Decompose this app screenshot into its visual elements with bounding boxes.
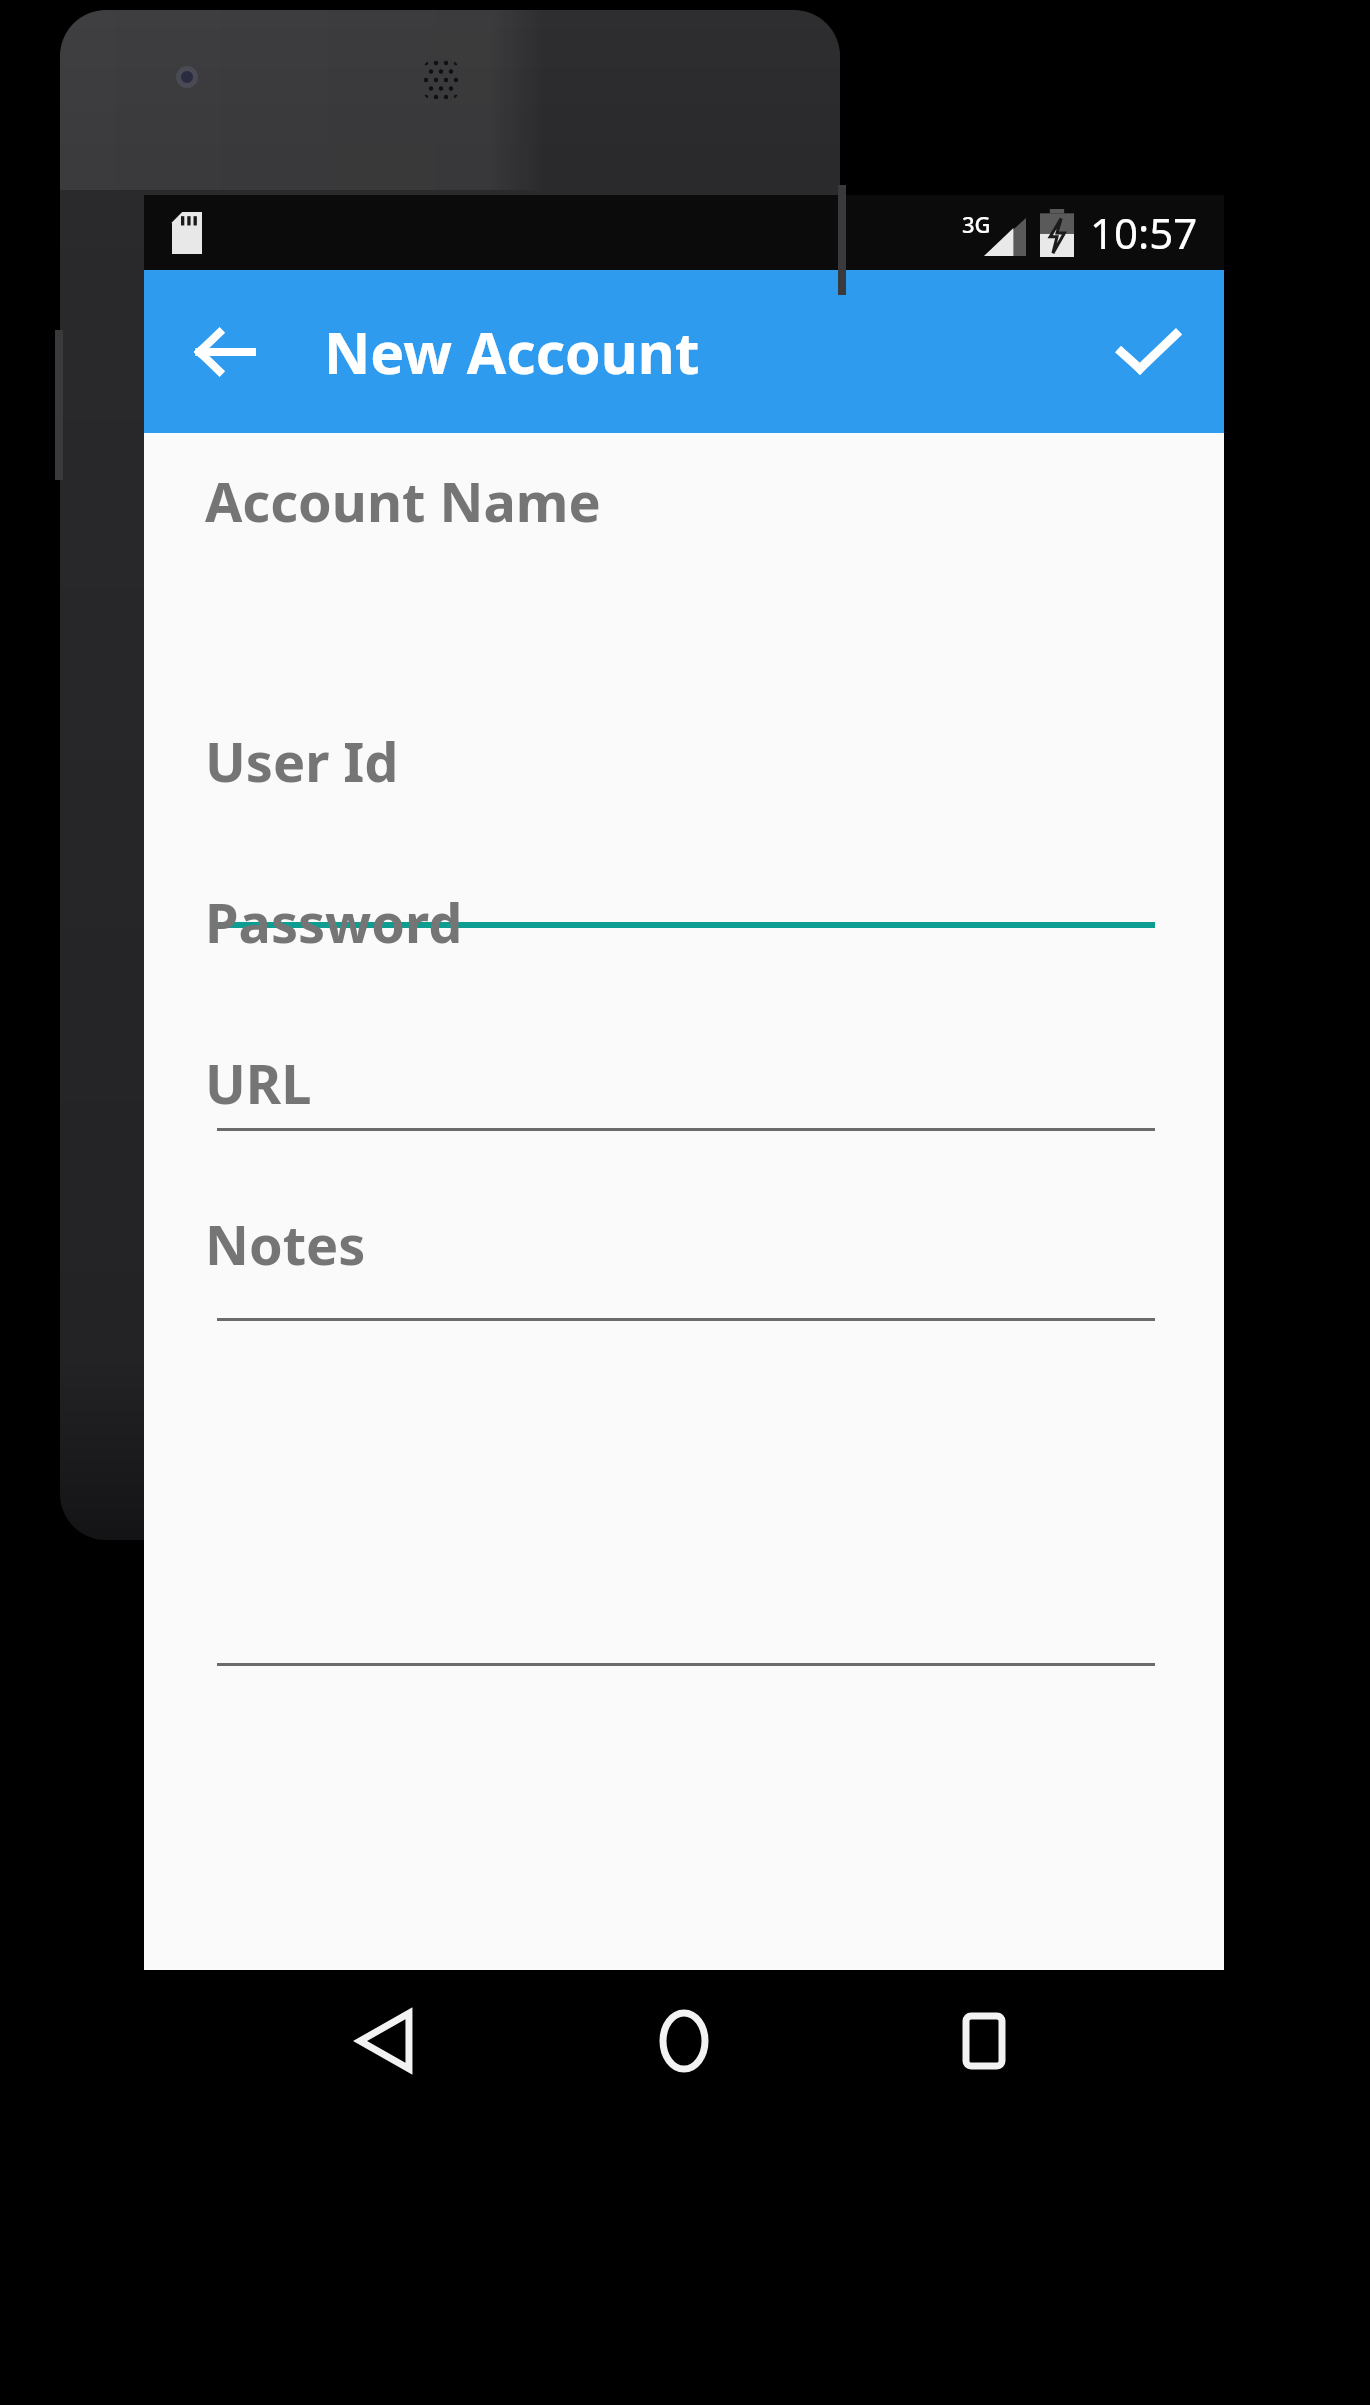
button[interactable]: Back [324, 1981, 444, 2101]
staticText: User Id [205, 724, 399, 798]
button[interactable]: URL [144, 1046, 1224, 1693]
staticText: Account Name [205, 464, 601, 538]
button[interactable]: Back [178, 306, 270, 398]
staticText: 10:57 [1090, 204, 1198, 261]
button[interactable]: Home [624, 1981, 744, 2101]
button[interactable]: Recent apps [924, 1981, 1044, 2101]
button[interactable]: Save [1100, 304, 1196, 400]
staticText: Password [205, 885, 463, 959]
staticText: New Account [324, 313, 700, 391]
staticText: URL [205, 1046, 312, 1120]
button[interactable]: Password [144, 885, 1224, 1348]
button[interactable]: Notes [144, 1207, 1224, 2063]
staticText: 3G [962, 209, 991, 239]
staticText: Notes [205, 1207, 366, 1281]
button[interactable]: User Id [144, 724, 1224, 1158]
button[interactable]: Account Name [144, 464, 1224, 952]
